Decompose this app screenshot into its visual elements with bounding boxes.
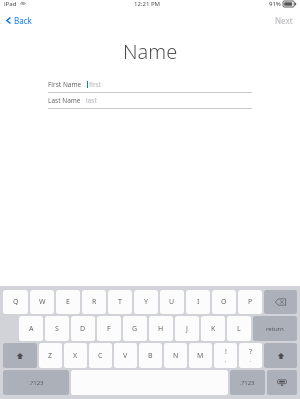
button[interactable]: J: [175, 316, 199, 341]
staticText: Y: [144, 297, 148, 307]
button[interactable]: P: [238, 290, 262, 314]
staticText: .: [250, 357, 252, 364]
button[interactable]: ?: [239, 343, 262, 368]
staticText: N: [173, 351, 179, 361]
staticText: 91%: [269, 0, 281, 8]
staticText: V: [123, 351, 128, 361]
button[interactable]: L: [227, 316, 251, 341]
button[interactable]: Z: [39, 343, 62, 368]
staticText: E: [66, 297, 70, 307]
button[interactable]: Q: [3, 290, 28, 314]
staticText: ?: [249, 347, 253, 357]
staticText: Next: [275, 15, 293, 26]
button[interactable]: Last Name: [48, 93, 252, 109]
staticText: F: [107, 324, 111, 334]
button[interactable]: Shift: [3, 343, 37, 368]
staticText: Last Name: [48, 96, 81, 105]
button[interactable]: E: [56, 290, 80, 314]
staticText: X: [73, 351, 78, 361]
button[interactable]: S: [45, 316, 69, 341]
button[interactable]: T: [108, 290, 132, 314]
button[interactable]: Next: [268, 12, 300, 29]
button[interactable]: !: [214, 343, 237, 368]
staticText: Q: [13, 297, 19, 307]
button[interactable]: B: [139, 343, 162, 368]
staticText: Z: [48, 351, 53, 361]
staticText: C: [98, 351, 103, 361]
button[interactable]: X: [64, 343, 87, 368]
button[interactable]: I: [186, 290, 210, 314]
staticText: L: [237, 324, 241, 334]
button[interactable]: return: [253, 316, 297, 341]
button[interactable]: .?123: [230, 370, 265, 395]
staticText: .?123: [240, 379, 255, 387]
button[interactable]: Y: [134, 290, 158, 314]
button[interactable]: H: [149, 316, 173, 341]
staticText: J: [186, 324, 188, 334]
staticText: first: [89, 80, 102, 89]
staticText: Back: [14, 15, 32, 26]
button[interactable]: V: [114, 343, 137, 368]
staticText: ,: [225, 357, 227, 364]
staticText: T: [118, 297, 122, 307]
button[interactable]: N: [164, 343, 187, 368]
staticText: W: [39, 297, 46, 307]
staticText: H: [158, 324, 164, 334]
button[interactable]: D: [71, 316, 95, 341]
button[interactable]: Shift: [264, 343, 297, 368]
staticText: Name: [123, 38, 178, 65]
button[interactable]: Backspace: [264, 290, 297, 314]
staticText: I: [197, 297, 200, 307]
button[interactable]: O: [212, 290, 236, 314]
staticText: First Name: [48, 80, 82, 89]
staticText: .?123: [29, 379, 44, 387]
button[interactable]: Back: [0, 12, 38, 29]
button[interactable]: A: [19, 316, 43, 341]
staticText: !: [225, 347, 227, 357]
button[interactable]: G: [123, 316, 147, 341]
button[interactable]: .?123: [3, 370, 69, 395]
staticText: R: [92, 297, 97, 307]
staticText: P: [248, 297, 253, 307]
button[interactable]: First Name: [48, 77, 252, 93]
button[interactable]: C: [89, 343, 112, 368]
staticText: K: [211, 324, 216, 334]
staticText: iPad: [4, 0, 17, 8]
staticText: S: [55, 324, 59, 334]
staticText: O: [221, 297, 227, 307]
button[interactable]: Hide keyboard: [267, 370, 297, 395]
staticText: B: [148, 351, 153, 361]
staticText: U: [169, 297, 175, 307]
button[interactable]: R: [82, 290, 106, 314]
staticText: return: [266, 325, 284, 333]
staticText: last: [86, 96, 97, 105]
button[interactable]: W: [30, 290, 54, 314]
staticText: 12:21 PM: [134, 0, 161, 8]
staticText: M: [197, 351, 204, 361]
staticText: D: [80, 324, 86, 334]
button[interactable]: F: [97, 316, 121, 341]
button[interactable]: K: [201, 316, 225, 341]
button[interactable]: M: [189, 343, 212, 368]
staticText: A: [29, 324, 34, 334]
button[interactable]: U: [160, 290, 184, 314]
staticText: G: [132, 324, 138, 334]
